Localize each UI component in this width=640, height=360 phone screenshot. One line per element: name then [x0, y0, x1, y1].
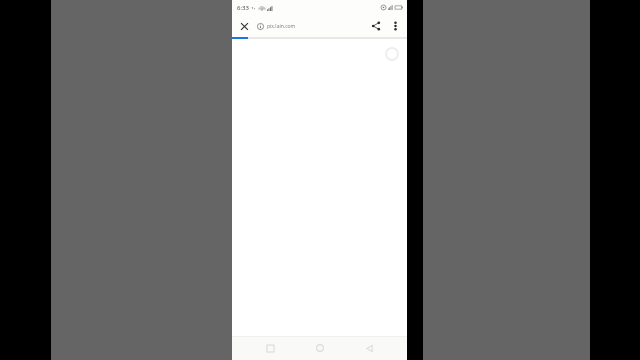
staticText: pix.lain.com [267, 23, 296, 30]
button[interactable]: Back [358, 337, 380, 359]
button[interactable]: Home [309, 337, 331, 359]
button[interactable]: More options [386, 17, 404, 35]
staticText: 6:33 [237, 4, 249, 12]
button[interactable]: Share [367, 17, 385, 35]
button[interactable]: Recents [259, 337, 281, 359]
button[interactable]: pix.lain.com [257, 16, 367, 36]
button[interactable]: Close [235, 17, 253, 35]
